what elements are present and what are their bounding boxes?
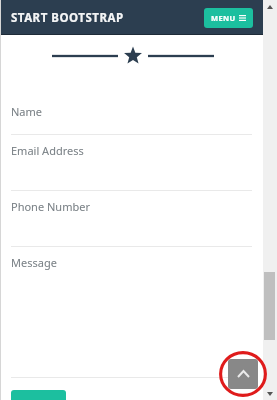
- button[interactable]: Email Address: [0, 135, 263, 191]
- button[interactable]: MENU: [204, 8, 253, 28]
- button[interactable]: Scroll down: [263, 387, 277, 400]
- staticText: Message: [11, 255, 57, 270]
- staticText: START BOOTSTRAP: [11, 10, 124, 26]
- button[interactable]: [11, 390, 66, 400]
- button[interactable]: Scroll up: [263, 0, 277, 13]
- staticText: Email Address: [11, 143, 84, 158]
- button[interactable]: Phone Number: [0, 191, 263, 247]
- staticText: MENU: [211, 13, 236, 23]
- button[interactable]: START BOOTSTRAP: [11, 10, 124, 26]
- button[interactable]: Scroll to top: [228, 359, 258, 389]
- button[interactable]: Message: [0, 247, 263, 378]
- staticText: Name: [11, 104, 43, 119]
- staticText: Phone Number: [11, 199, 90, 214]
- button[interactable]: Name: [0, 96, 263, 135]
